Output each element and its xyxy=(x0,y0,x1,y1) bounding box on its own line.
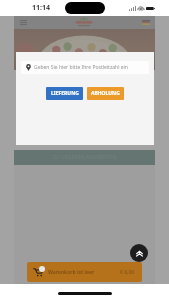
button[interactable]: LIEFERUNG xyxy=(46,87,83,100)
staticText: 11:14 xyxy=(32,3,50,13)
staticText: Warenkorb ist leer xyxy=(48,269,120,276)
button[interactable]: Menu xyxy=(18,18,28,27)
staticText: € 0,00 xyxy=(120,269,135,276)
button[interactable]: Warenkorb ist leer xyxy=(27,262,142,282)
staticText: Geben Sie hier bitte Ihre Postleitzahl e… xyxy=(34,64,128,71)
button[interactable] xyxy=(0,16,169,284)
button[interactable]: Language: German xyxy=(141,18,151,27)
button[interactable]: Geben Sie hier bitte Ihre Postleitzahl e… xyxy=(21,61,149,74)
staticText: ABHOLUNG xyxy=(91,90,120,97)
button[interactable]: ABHOLUNG xyxy=(87,87,124,100)
button[interactable]: Scroll to top xyxy=(130,244,148,262)
staticText: LIEFERUNG xyxy=(51,90,79,97)
button[interactable]: La Palma home xyxy=(69,17,99,28)
